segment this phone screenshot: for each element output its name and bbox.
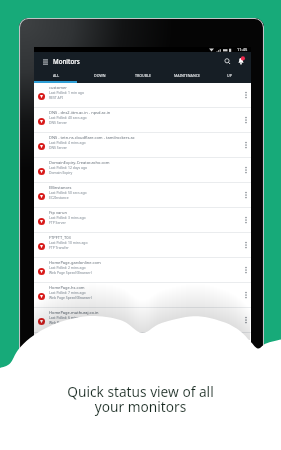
button[interactable]: More options — [240, 208, 251, 231]
staticText: Quick status view of all your monitors — [67, 382, 214, 416]
staticText: HomePage-muthuraj.co.in — [49, 310, 99, 315]
staticText: ALL — [53, 73, 60, 78]
staticText: Last Polled: 40 secs ago — [49, 115, 87, 120]
staticText: FTPFTT_T03 — [49, 235, 71, 240]
button[interactable]: HomePage-hs.com — [34, 283, 251, 307]
button[interactable]: DNS - dns2.iitm.ac.in - npsd.ac.in — [34, 108, 251, 132]
staticText: REST API — [49, 95, 63, 100]
button[interactable]: HomePage-muthuraj.co.in — [34, 308, 251, 332]
button[interactable]: ALL — [34, 70, 78, 81]
staticText: Domain Expiry — [49, 170, 73, 175]
staticText: DNS - tetn.ns.cloudflare.com - tamilrock… — [49, 135, 135, 140]
button[interactable]: DOWN — [78, 70, 122, 81]
button[interactable]: customer — [34, 83, 251, 107]
staticText: Last Polled: 3 mins ago — [49, 215, 86, 220]
staticText: EBinstances — [49, 185, 72, 190]
button[interactable]: More options — [240, 158, 251, 181]
staticText: HomePage-gardonline.com — [49, 260, 101, 265]
staticText: Last Polled: 1 min ago — [49, 90, 84, 95]
staticText: DNS - dns2.iitm.ac.in - npsd.ac.in — [49, 110, 111, 115]
staticText: EC2Instance — [49, 195, 69, 200]
staticText: Last Polled: 4 mins ago — [49, 140, 86, 145]
button[interactable]: TROUBLE — [122, 70, 165, 81]
staticText: DomainExpiry-Creator.zoho.com — [49, 160, 110, 165]
staticText: Last Polled: 7 mins ago — [49, 290, 86, 295]
button[interactable]: FTPFTT_T03 — [34, 233, 251, 257]
staticText: 11:45 — [237, 47, 248, 52]
button[interactable]: Search — [221, 55, 234, 68]
button[interactable]: More options — [240, 83, 251, 106]
button[interactable]: More options — [240, 133, 251, 156]
button[interactable]: More options — [240, 233, 251, 256]
staticText: DNS Server — [49, 120, 68, 125]
staticText: Monitors — [53, 57, 80, 65]
button[interactable]: Alerts — [234, 54, 248, 68]
staticText: Ftp varun — [49, 210, 67, 215]
staticText: Last Polled: 2 mins ago — [49, 265, 86, 270]
button[interactable]: Open navigation menu — [41, 57, 50, 66]
button[interactable]: Ftp varun — [34, 208, 251, 232]
staticText: customer — [49, 85, 67, 90]
staticText: UP — [227, 73, 232, 78]
staticText: TROUBLE — [135, 73, 152, 78]
staticText: HomePage-hs.com — [49, 285, 85, 290]
staticText: Web Page Speed (Browser) — [49, 270, 92, 275]
staticText: DOWN — [94, 73, 106, 78]
staticText: Last Polled: 6 mins ago — [49, 315, 86, 320]
staticText: Last Polled: 10 mins ago — [49, 240, 88, 245]
staticText: Last Polled: 12 days ago — [49, 165, 88, 170]
button[interactable]: EBinstances — [34, 183, 251, 207]
button[interactable]: HomePage-gardonline.com — [34, 258, 251, 282]
button[interactable]: More options — [240, 283, 251, 306]
staticText: DNS Server — [49, 145, 68, 150]
staticText: FTP Transfer — [49, 245, 69, 250]
staticText: FTP Server — [49, 220, 66, 225]
button[interactable]: More options — [240, 308, 251, 331]
button[interactable]: DomainExpiry-Creator.zoho.com — [34, 158, 251, 182]
staticText: MAINTENANCE — [174, 73, 200, 78]
button[interactable]: More options — [240, 183, 251, 206]
button[interactable]: DNS - tetn.ns.cloudflare.com - tamilrock… — [34, 133, 251, 157]
staticText: Web Page Speed (Browser) — [49, 295, 92, 300]
staticText: Last Polled: 50 secs ago — [49, 190, 87, 195]
button[interactable]: UP — [208, 70, 251, 81]
staticText: Web Page Speed — [49, 320, 76, 325]
button[interactable]: MAINTENANCE — [165, 70, 208, 81]
button[interactable]: More options — [240, 258, 251, 281]
button[interactable]: More options — [240, 108, 251, 131]
